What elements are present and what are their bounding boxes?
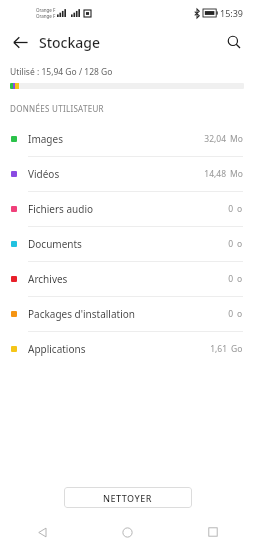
button[interactable]: Search — [220, 28, 248, 56]
button[interactable]: Images — [0, 122, 255, 156]
staticText: 0 — [228, 273, 233, 285]
staticText: o — [237, 273, 243, 285]
staticText: Documents — [28, 237, 82, 251]
staticText: 1,61 — [210, 343, 227, 355]
staticText: Stockage — [39, 33, 101, 52]
staticText: Packages d'installation — [28, 307, 135, 321]
staticText: Applications — [28, 342, 86, 356]
staticText: 32,04 — [204, 133, 226, 145]
button[interactable]: Home — [85, 518, 170, 546]
staticText: Mo — [230, 168, 243, 180]
staticText: o — [237, 203, 243, 215]
staticText: 15:39 — [220, 7, 244, 19]
button[interactable]: Packages d'installation — [0, 297, 255, 331]
staticText: 0 — [228, 308, 233, 320]
staticText: Mo — [230, 133, 243, 145]
staticText: 0 — [228, 203, 233, 215]
staticText: Images — [28, 132, 63, 146]
staticText: Fichiers audio — [28, 202, 94, 216]
staticText: Vidéos — [28, 167, 60, 181]
staticText: Go — [231, 343, 243, 355]
staticText: Orange F — [36, 13, 56, 19]
staticText: o — [237, 308, 243, 320]
button[interactable]: Vidéos — [0, 157, 255, 191]
staticText: Orange F — [36, 7, 56, 13]
button[interactable]: Back — [6, 28, 34, 56]
button[interactable]: Recent apps — [170, 518, 255, 546]
staticText: 0 — [228, 238, 233, 250]
button[interactable]: Applications — [0, 332, 255, 366]
staticText: Archives — [28, 272, 68, 286]
button[interactable]: Back — [0, 518, 85, 546]
staticText: NETTOYER — [103, 492, 153, 504]
button[interactable]: Documents — [0, 227, 255, 261]
staticText: o — [237, 238, 243, 250]
staticText: 14,48 — [204, 168, 226, 180]
staticText: DONNÉES UTILISATEUR — [10, 103, 104, 114]
button[interactable]: NETTOYER — [64, 487, 192, 508]
button[interactable]: Archives — [0, 262, 255, 296]
button[interactable]: Fichiers audio — [0, 192, 255, 226]
staticText: Utilisé : 15,94 Go / 128 Go — [10, 66, 113, 78]
